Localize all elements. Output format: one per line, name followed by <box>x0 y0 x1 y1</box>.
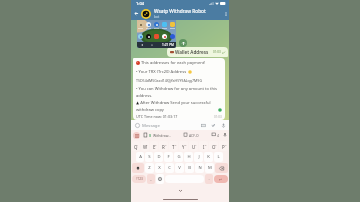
staticText: Z <box>148 165 151 171</box>
button[interactable]: Keyboard <box>200 122 206 128</box>
staticText: 7 <box>195 143 197 146</box>
button[interactable]: Z <box>145 163 154 173</box>
button[interactable]: 3 <box>150 141 158 151</box>
staticText: 0 <box>225 143 227 146</box>
staticText: , <box>150 176 152 182</box>
staticText: C <box>168 165 171 171</box>
staticText: B <box>188 165 191 171</box>
button[interactable]: D <box>154 152 163 162</box>
staticText: A <box>139 154 142 160</box>
staticText: UTC Time now: 01:03:17 <box>136 114 178 119</box>
button[interactable]: 5 <box>169 141 178 151</box>
button[interactable]: , <box>147 174 155 184</box>
staticText: H <box>187 154 191 160</box>
staticText: Withdraw... <box>153 133 171 138</box>
staticText: E <box>153 144 156 150</box>
button[interactable]: 1 <box>132 141 140 151</box>
staticText: 9 <box>215 143 217 146</box>
staticText: O <box>212 144 216 150</box>
button[interactable]: B <box>185 163 194 173</box>
staticText: L <box>217 154 220 160</box>
staticText: P <box>222 144 225 150</box>
button[interactable]: ?123 <box>132 175 146 183</box>
button[interactable]: Forward message <box>179 39 187 47</box>
staticText: X <box>158 165 161 171</box>
button[interactable]: . <box>205 174 213 184</box>
staticText: Y <box>182 144 185 150</box>
button[interactable]: Keyboard settings <box>133 132 140 139</box>
staticText: This addresses for each payment! <box>141 60 206 66</box>
button[interactable]: H <box>184 152 193 162</box>
button[interactable]: 7 <box>189 141 198 151</box>
button[interactable]: A <box>136 152 144 162</box>
button[interactable]: C <box>165 163 174 173</box>
button[interactable]: X <box>155 163 164 173</box>
button[interactable]: J <box>194 152 203 162</box>
staticText: 3 <box>155 143 157 146</box>
button[interactable]: 8 <box>199 141 208 151</box>
button[interactable] <box>215 163 228 173</box>
staticText: I <box>203 144 205 150</box>
staticText: 01:03 <box>214 115 222 119</box>
staticText: Wsatp Withdraw Robot <box>154 8 206 15</box>
staticText: Message <box>142 122 160 128</box>
button[interactable]: L <box>214 152 223 162</box>
staticText: Wallet Address <box>175 49 209 55</box>
button[interactable] <box>132 163 144 173</box>
button[interactable]: F <box>164 152 173 162</box>
button[interactable]: 2 <box>141 141 149 151</box>
staticText: $ <box>149 133 152 138</box>
staticText: 5 <box>175 143 177 146</box>
button[interactable]: Emoji <box>134 122 140 128</box>
button[interactable]: This addresses for each payment! <box>136 60 222 119</box>
button[interactable]: More options <box>222 7 229 20</box>
button[interactable]: M <box>205 163 214 173</box>
button[interactable]: Profile photo <box>141 9 151 19</box>
staticText: T <box>172 144 175 150</box>
staticText: ↵ <box>219 177 223 181</box>
button[interactable]: N <box>195 163 204 173</box>
staticText: • Your TRX (Trc20) Address <box>136 69 187 75</box>
staticText: K <box>207 154 210 160</box>
staticText: 1:21 PM <box>162 43 174 47</box>
button[interactable]: 9 <box>209 141 218 151</box>
staticText: 6 <box>185 143 187 146</box>
staticText: D <box>157 154 161 160</box>
staticText: F <box>167 154 170 160</box>
button[interactable]: Back <box>131 7 141 20</box>
staticText: ?123 <box>136 177 143 181</box>
staticText: V <box>178 165 181 171</box>
staticText: R <box>162 144 165 150</box>
staticText: 8 <box>205 143 207 146</box>
button[interactable]: 1:21 PM <box>137 20 176 48</box>
button[interactable]: 4 <box>159 141 168 151</box>
button[interactable]: S <box>145 152 153 162</box>
staticText: 4 <box>217 133 219 138</box>
staticText: N <box>198 165 202 171</box>
button[interactable]: 0 <box>219 141 228 151</box>
staticText: • You can Withdraw for any amount to thi… <box>136 86 222 98</box>
staticText: 4 <box>165 143 167 146</box>
button[interactable]: 6 <box>179 141 188 151</box>
button[interactable]: Wallet Address <box>170 49 225 55</box>
staticText: U <box>192 144 196 150</box>
staticText: G <box>177 154 181 160</box>
button[interactable]: Enter <box>214 175 228 183</box>
staticText: 1:04 <box>136 1 144 6</box>
button[interactable] <box>156 174 164 184</box>
staticText: 1 <box>137 143 139 146</box>
button[interactable]: Voice message <box>220 122 226 128</box>
staticText: J <box>198 154 200 160</box>
staticText: TSD54dM5Gsxd14XJjYaH5Y9ALqg7M9G <box>136 78 202 83</box>
button[interactable]: Attach <box>210 122 216 128</box>
staticText: . <box>208 176 210 182</box>
button[interactable]: G <box>174 152 183 162</box>
staticText: M <box>208 165 212 171</box>
staticText: W <box>143 144 148 150</box>
staticText: S <box>148 154 151 160</box>
staticText: 01:03 <box>213 50 221 54</box>
button[interactable]: V <box>175 163 184 173</box>
button[interactable]: Hide keyboard <box>177 187 184 193</box>
button[interactable]: K <box>204 152 213 162</box>
